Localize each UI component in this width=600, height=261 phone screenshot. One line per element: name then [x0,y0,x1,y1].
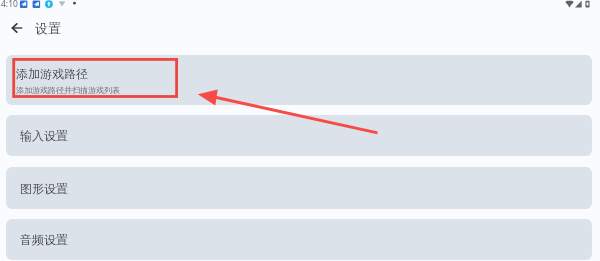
button[interactable]: 添加游戏路径 [6,55,592,105]
staticText: 设置 [35,20,61,36]
staticText: 添加游戏路径并扫描游戏列表 [16,85,120,95]
staticText: 图形设置 [20,181,68,196]
button[interactable]: Back [4,15,30,41]
button[interactable]: 音频设置 [6,219,592,260]
staticText: 4:10 [1,0,18,10]
button[interactable]: 图形设置 [6,167,592,209]
staticText: 输入设置 [20,128,68,143]
staticText: 音频设置 [20,232,68,247]
staticText: 添加游戏路径 [16,66,88,81]
button[interactable]: 输入设置 [6,115,592,156]
